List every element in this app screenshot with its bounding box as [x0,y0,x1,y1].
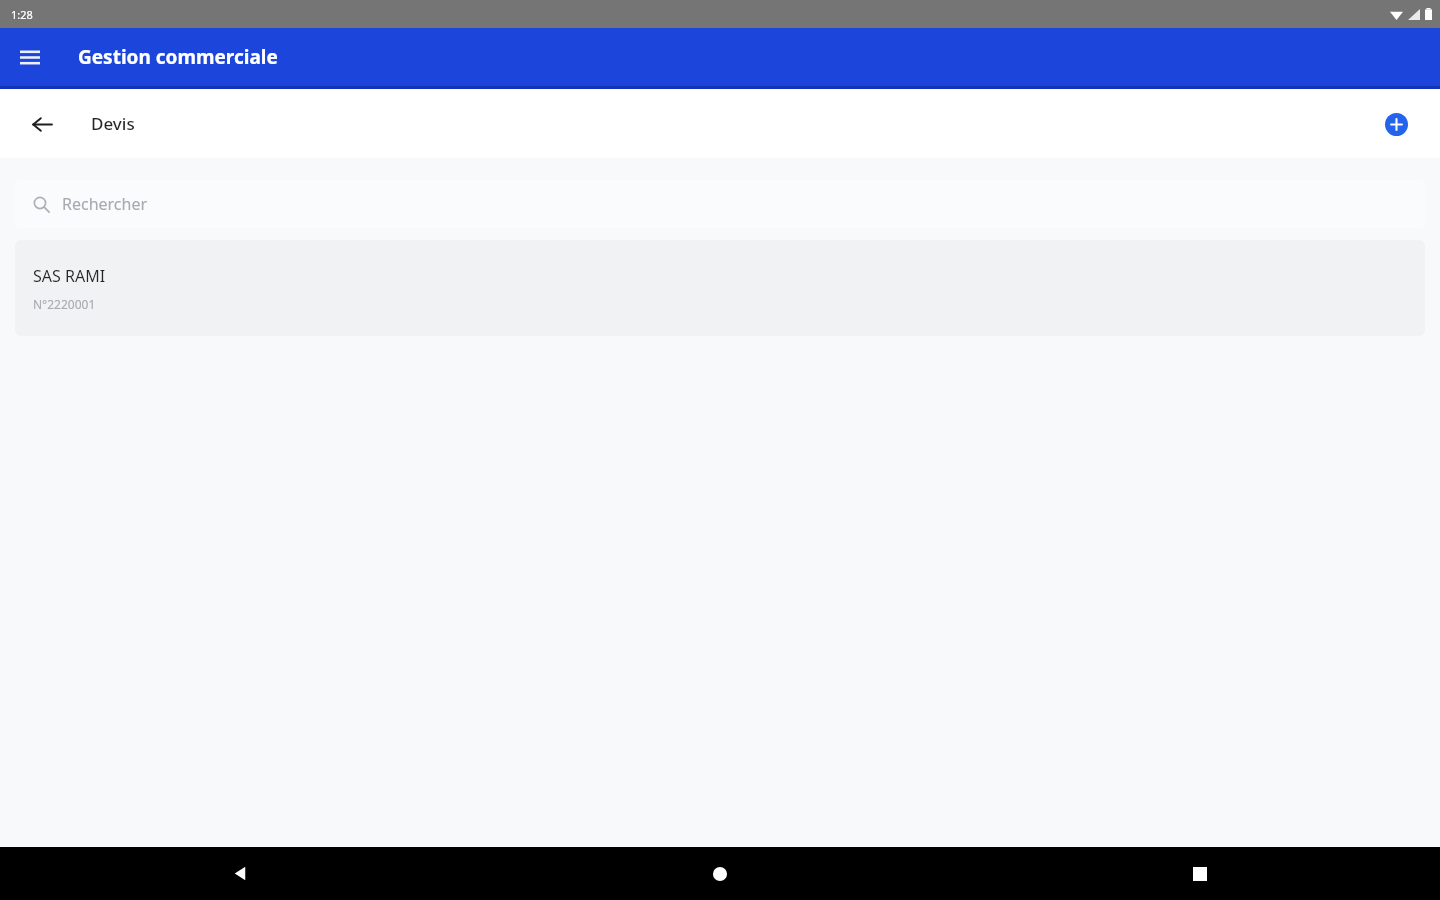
button[interactable]: Home [480,847,960,900]
staticText: 1:28 [11,7,33,22]
button[interactable]: Back [22,104,62,144]
staticText: Devis [91,112,135,135]
button[interactable]: Open navigation menu [10,37,50,77]
button[interactable]: Back [0,847,480,900]
staticText: Gestion commerciale [78,44,278,70]
button[interactable]: SAS RAMI [15,240,1425,336]
button[interactable]: Recent apps [960,847,1440,900]
staticText: N°2220001 [33,296,96,312]
staticText: Rechercher [62,193,148,215]
staticText: SAS RAMI [33,265,106,287]
button[interactable]: Rechercher [15,180,1425,228]
button[interactable]: Add new quote [1376,104,1416,144]
